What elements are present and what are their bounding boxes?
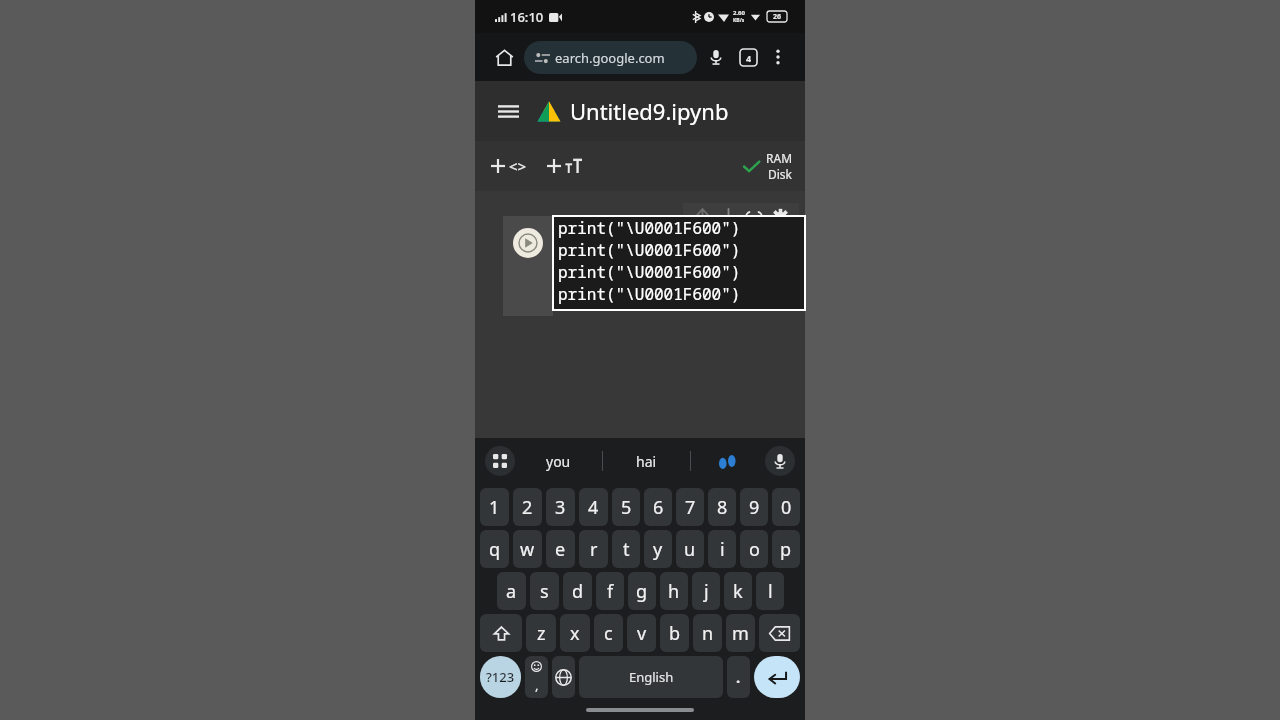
button[interactable]: t (612, 530, 640, 568)
button[interactable]: d (563, 572, 592, 610)
staticText: print("\U0001F600") (558, 239, 741, 261)
button[interactable]: z (526, 614, 556, 652)
button[interactable]: y (644, 530, 672, 568)
staticText: 9 (749, 495, 760, 520)
button[interactable]: c (594, 614, 623, 652)
staticText: h (668, 579, 680, 604)
button[interactable]: Emoji (525, 656, 548, 698)
button[interactable]: a (497, 572, 526, 610)
button[interactable]: s (530, 572, 559, 610)
button[interactable]: b (660, 614, 689, 652)
button[interactable]: l (756, 572, 784, 610)
staticText: y (653, 537, 663, 562)
button[interactable]: Voice input (765, 446, 795, 476)
button[interactable]: Menu (491, 94, 525, 128)
staticText: you (546, 452, 571, 471)
staticText: w (520, 537, 535, 562)
staticText: hai (636, 452, 657, 471)
button[interactable]: 0 (772, 488, 800, 526)
button[interactable]: k (724, 572, 752, 610)
staticText: t (623, 537, 630, 562)
staticText: r (590, 537, 598, 562)
staticText: s (540, 579, 549, 604)
staticText: Disk (768, 166, 793, 182)
button[interactable]: ?123 (480, 656, 521, 698)
button[interactable]: hai (603, 438, 690, 484)
button[interactable]: p (772, 530, 800, 568)
staticText: RAM (766, 150, 793, 166)
staticText: 1 (489, 495, 500, 520)
button[interactable]: h (660, 572, 688, 610)
button[interactable]: v (627, 614, 656, 652)
staticText: 26 (773, 12, 782, 22)
button[interactable]: g (628, 572, 656, 610)
button[interactable]: <> (489, 152, 529, 180)
button[interactable]: q (480, 530, 509, 568)
button[interactable]: Backspace (759, 614, 800, 652)
staticText: m (732, 621, 749, 646)
button[interactable]: j (692, 572, 720, 610)
button[interactable]: r (579, 530, 608, 568)
staticText: e (555, 537, 566, 562)
staticText: earch.google.com (555, 49, 665, 67)
staticText: b (669, 621, 681, 646)
button[interactable]: i (708, 530, 736, 568)
button[interactable]: Change language (552, 656, 575, 698)
staticText: 2.60 (733, 9, 745, 17)
staticText: u (684, 537, 696, 562)
button[interactable]: Emoji suggestion (691, 438, 765, 484)
button[interactable]: 6 (644, 488, 672, 526)
button[interactable]: Shift (480, 614, 522, 652)
button[interactable]: Keyboard options (485, 446, 515, 476)
staticText: a (506, 579, 517, 604)
button[interactable]: w (513, 530, 542, 568)
staticText: print("\U0001F600") (558, 261, 741, 283)
button[interactable]: Voice search (701, 42, 731, 72)
button[interactable]: Move cell up (689, 204, 715, 230)
staticText: ?123 (486, 668, 515, 686)
button[interactable]: Cell settings (767, 204, 793, 230)
button[interactable]: e (546, 530, 575, 568)
button[interactable]: o (740, 530, 768, 568)
staticText: . (736, 667, 741, 687)
button[interactable]: Tabs (733, 42, 763, 72)
staticText: q (489, 537, 501, 562)
staticText: 4 (588, 495, 599, 520)
button[interactable]: Link to cell (741, 204, 767, 230)
button[interactable]: 3 (546, 488, 575, 526)
button[interactable]: 2 (513, 488, 542, 526)
staticText: 6 (653, 495, 664, 520)
button[interactable]: x (560, 614, 590, 652)
button[interactable]: 4 (579, 488, 608, 526)
staticText: i (720, 537, 725, 562)
button[interactable]: Home (489, 42, 519, 72)
button[interactable]: 5 (612, 488, 640, 526)
button[interactable]: n (693, 614, 722, 652)
staticText: z (537, 621, 546, 646)
button[interactable]: print("\U0001F600") (553, 216, 805, 310)
button[interactable]: earch.google.com (524, 41, 697, 74)
button[interactable]: More options (765, 44, 791, 70)
staticText: v (637, 621, 647, 646)
button[interactable]: Enter (754, 656, 800, 698)
button[interactable]: you (515, 438, 602, 484)
button[interactable]: Move cell down (715, 204, 741, 230)
staticText: 0 (781, 495, 792, 520)
button[interactable]: u (676, 530, 704, 568)
button[interactable]: m (726, 614, 755, 652)
button[interactable]: Run cell (513, 228, 543, 258)
staticText: English (629, 668, 674, 686)
staticText: KB/s (733, 17, 745, 24)
button[interactable]: 7 (676, 488, 704, 526)
button[interactable]: English (579, 656, 723, 698)
staticText: print("\U0001F600") (558, 283, 741, 305)
button[interactable]: f (596, 572, 624, 610)
button[interactable] (545, 155, 584, 177)
button[interactable]: 9 (740, 488, 768, 526)
staticText: 3 (555, 495, 566, 520)
button[interactable]: . (727, 656, 750, 698)
button[interactable]: 1 (480, 488, 509, 526)
button[interactable]: 8 (708, 488, 736, 526)
staticText: n (702, 621, 714, 646)
staticText: x (570, 621, 580, 646)
